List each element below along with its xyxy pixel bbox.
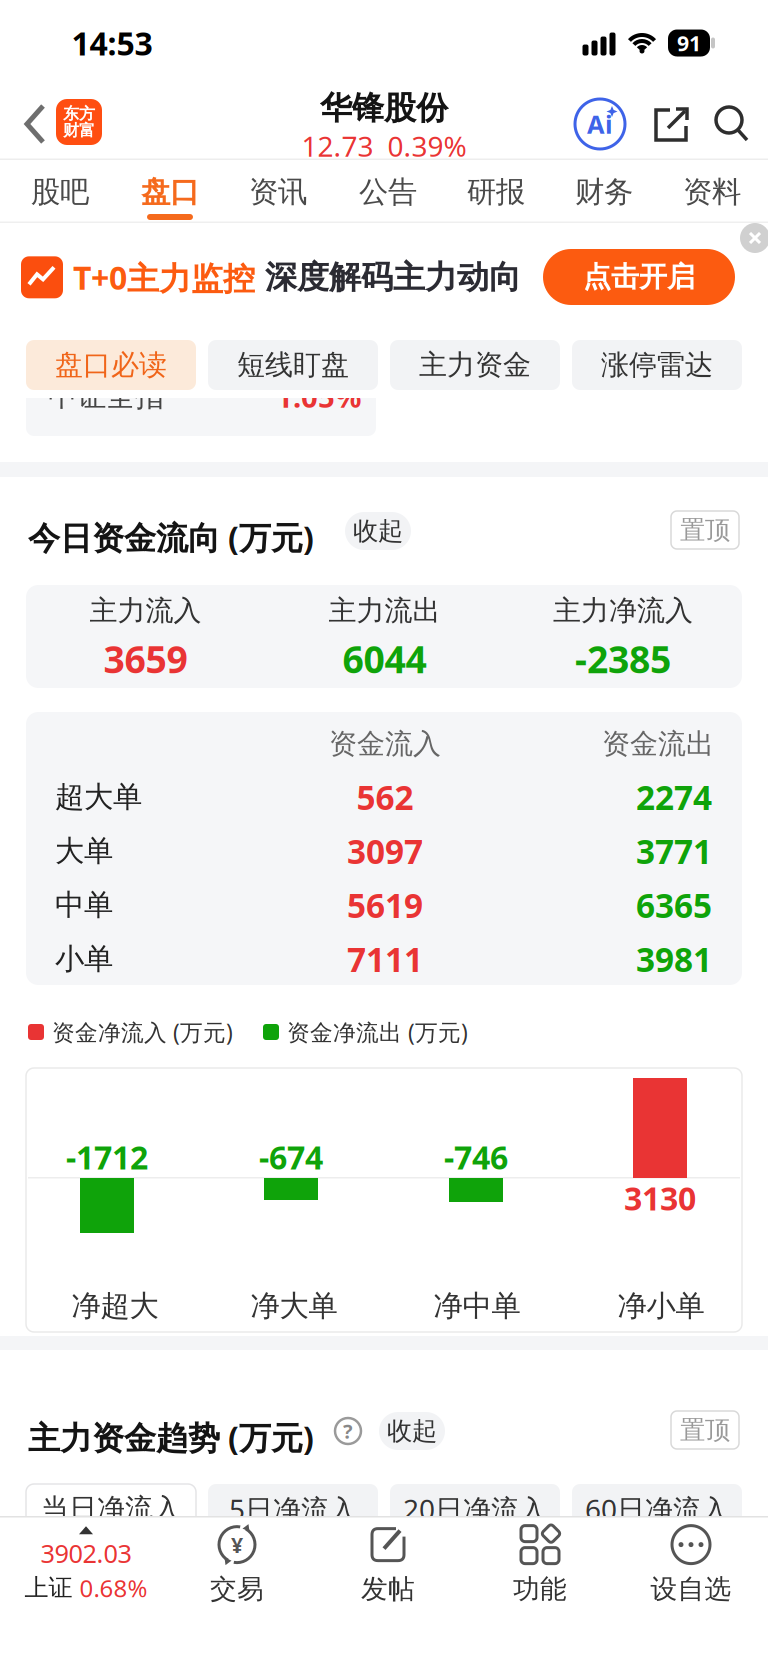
button[interactable]: 置顶 <box>671 511 739 549</box>
button[interactable]: 当日净流入 <box>26 1484 196 1534</box>
staticText: 上证 <box>24 1573 72 1603</box>
staticText: 0.68% <box>79 1572 147 1604</box>
staticText: 5日净流入 <box>229 1490 357 1528</box>
staticText: 3981 <box>636 937 712 981</box>
button[interactable]: ¥ <box>210 1523 264 1605</box>
staticText: 主力流入 <box>89 593 201 628</box>
staticText: 交易 <box>210 1573 264 1605</box>
staticText: 中证全指 <box>48 378 164 414</box>
button[interactable] <box>740 223 768 253</box>
staticText: ¥ <box>231 1530 243 1559</box>
staticText: 发帖 <box>361 1573 415 1605</box>
staticText: 净大单 <box>250 1288 337 1324</box>
staticText: 资金流出 <box>602 727 714 761</box>
button[interactable] <box>23 102 49 146</box>
staticText: 资金净流出 (万元) <box>287 1017 468 1047</box>
staticText: 涨停雷达 <box>601 348 713 382</box>
button[interactable]: 资讯 <box>249 174 307 210</box>
staticText: 12.73 <box>301 127 373 165</box>
staticText: 华锋股份 <box>320 88 448 128</box>
button[interactable]: 公告 <box>359 174 417 210</box>
staticText: 0.39% <box>387 127 466 165</box>
button[interactable]: 股吧 <box>31 174 89 210</box>
staticText: 562 <box>356 775 413 819</box>
staticText: 收起 <box>387 1415 437 1446</box>
button[interactable]: 20日净流入 <box>390 1484 560 1534</box>
button[interactable]: 5日净流入 <box>208 1484 378 1534</box>
staticText: 5619 <box>347 883 423 927</box>
button[interactable]: Ai <box>574 98 626 150</box>
staticText: 当日净流入 <box>41 1492 181 1526</box>
staticText: 3659 <box>103 634 187 683</box>
staticText: -1712 <box>66 1136 148 1178</box>
button[interactable]: 短线盯盘 <box>208 340 378 390</box>
staticText: 研报 <box>467 174 525 210</box>
button[interactable]: 3902.03 <box>24 1526 147 1604</box>
button[interactable] <box>646 102 690 146</box>
staticText: 净中单 <box>433 1288 520 1324</box>
staticText: 置顶 <box>680 514 730 545</box>
button[interactable]: 发帖 <box>361 1523 415 1605</box>
button[interactable] <box>709 102 753 146</box>
staticText: 东方 <box>63 104 95 123</box>
staticText: 3130 <box>624 1177 696 1219</box>
staticText: 2274 <box>636 775 712 819</box>
button[interactable]: 60日净流入 <box>572 1484 742 1534</box>
button[interactable]: 盘口必读 <box>26 340 196 390</box>
staticText: 20日净流入 <box>403 1490 547 1528</box>
staticText: 超大单 <box>55 779 142 815</box>
button[interactable]: ? <box>335 1418 361 1444</box>
staticText: 主力资金 <box>419 348 531 382</box>
staticText: -674 <box>259 1136 323 1178</box>
staticText: 1.05% <box>276 377 361 416</box>
button[interactable]: 功能 <box>513 1523 567 1605</box>
staticText: 财务 <box>575 174 633 210</box>
staticText: 资金流入 <box>329 727 441 761</box>
staticText: 置顶 <box>680 1414 730 1445</box>
button[interactable]: T+0主力监控 <box>21 256 521 299</box>
staticText: 3097 <box>347 829 423 873</box>
staticText: 小单 <box>55 941 113 977</box>
staticText: 净超大 <box>71 1288 158 1324</box>
staticText: 财富 <box>63 120 95 140</box>
staticText: 7111 <box>347 937 423 981</box>
staticText: -2385 <box>575 634 671 683</box>
staticText: Ai <box>587 107 613 141</box>
button[interactable]: 设自选 <box>650 1523 731 1605</box>
staticText: 资金净流入 (万元) <box>52 1017 233 1047</box>
staticText: 功能 <box>513 1573 567 1605</box>
button[interactable]: 收起 <box>379 1412 445 1450</box>
button[interactable]: 东方 <box>56 99 102 145</box>
button[interactable]: 盘口 <box>141 174 199 210</box>
staticText: 收起 <box>353 515 403 546</box>
staticText: 设自选 <box>650 1573 731 1605</box>
staticText: 3902.03 <box>40 1536 131 1570</box>
staticText: 6044 <box>342 634 426 683</box>
button[interactable]: 点击开启 <box>543 249 735 305</box>
staticText: 3771 <box>636 829 712 873</box>
staticText: 盘口 <box>141 174 199 210</box>
button[interactable]: 研报 <box>467 174 525 210</box>
staticText: 主力流出 <box>328 593 440 628</box>
button[interactable]: 置顶 <box>671 1411 739 1449</box>
staticText: 净小单 <box>617 1288 704 1324</box>
staticText: 公告 <box>359 174 417 210</box>
staticText: 股吧 <box>31 174 89 210</box>
button[interactable]: 收起 <box>345 512 411 550</box>
button[interactable]: 主力资金 <box>390 340 560 390</box>
staticText: -746 <box>444 1136 508 1178</box>
staticText: 点击开启 <box>583 260 695 294</box>
staticText: T+0主力监控 <box>73 256 255 299</box>
button[interactable]: 涨停雷达 <box>572 340 742 390</box>
button[interactable]: 财务 <box>575 174 633 210</box>
staticText: 资料 <box>683 174 741 210</box>
staticText: 6365 <box>636 883 712 927</box>
button[interactable]: 资料 <box>683 174 741 210</box>
staticText: 主力资金趋势 (万元) <box>28 1416 314 1458</box>
staticText: 大单 <box>55 833 113 869</box>
staticText: 盘口必读 <box>55 348 167 382</box>
staticText: 中单 <box>55 887 113 923</box>
staticText: 资讯 <box>249 174 307 210</box>
staticText: 深度解码主力动向 <box>265 258 521 297</box>
staticText: 主力净流入 <box>553 593 693 628</box>
